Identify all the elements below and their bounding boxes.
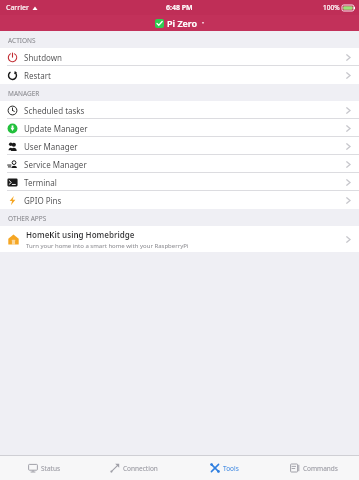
button[interactable]: Update Manager xyxy=(0,119,359,137)
staticText: HomeKit using Homebridge xyxy=(26,229,135,240)
staticText: Scheduled tasks xyxy=(24,105,85,116)
button[interactable]: Status xyxy=(0,456,89,480)
button[interactable]: Tools xyxy=(179,456,269,480)
staticText: Commands xyxy=(303,464,338,473)
staticText: Service Manager xyxy=(24,159,87,170)
staticText: Pi Zero xyxy=(167,17,198,29)
button[interactable]: Pi Zero xyxy=(155,17,205,29)
staticText: 100% xyxy=(323,3,340,12)
staticText: Carrier xyxy=(6,3,29,13)
staticText: ACTIONS xyxy=(8,36,36,45)
staticText: 6:48 PM xyxy=(166,3,193,13)
staticText: Restart xyxy=(24,70,51,81)
staticText: Update Manager xyxy=(24,123,88,134)
staticText: Status xyxy=(41,464,61,473)
staticText: Turn your home into a smart home with yo… xyxy=(26,242,189,250)
staticText: OTHER APPS xyxy=(8,214,47,223)
staticText: GPIO Pins xyxy=(24,195,62,206)
button[interactable]: Scheduled tasks xyxy=(0,101,359,119)
button[interactable]: Connection xyxy=(89,456,179,480)
button[interactable]: User Manager xyxy=(0,137,359,155)
button[interactable]: Terminal xyxy=(0,173,359,191)
staticText: User Manager xyxy=(24,141,78,152)
button[interactable]: GPIO Pins xyxy=(0,191,359,209)
button[interactable]: Shutdown xyxy=(0,48,359,66)
button[interactable]: Restart xyxy=(0,66,359,84)
staticText: Connection xyxy=(123,464,158,473)
staticText: Shutdown xyxy=(24,52,62,63)
staticText: Tools xyxy=(223,464,239,473)
button[interactable]: Service Manager xyxy=(0,155,359,173)
button[interactable]: Commands xyxy=(269,456,359,480)
staticText: MANAGER xyxy=(8,89,40,98)
button[interactable]: HomeKit using Homebridge xyxy=(0,226,359,252)
staticText: Terminal xyxy=(24,177,57,188)
